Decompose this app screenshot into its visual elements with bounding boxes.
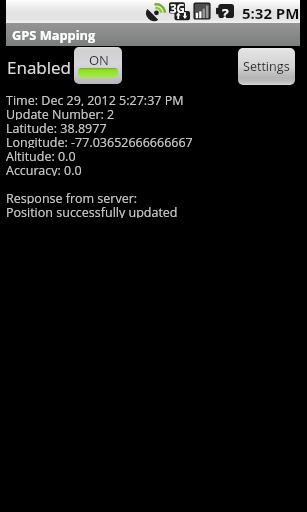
staticText: ? [222,4,229,20]
staticText: 3G [170,1,185,17]
staticText: Altitude: 0.0 [6,148,76,162]
button[interactable]: Settings [238,48,295,85]
staticText: GPS Mapping [12,26,96,43]
staticText: Latitude: 38.8977 [6,120,107,134]
staticText: 5:32 PM [242,3,300,23]
staticText: Position successfully updated [6,204,178,218]
staticText: Response from server: [6,190,138,204]
staticText: Update Number: 2 [6,106,115,120]
staticText: Longitude: -77.03652666666667 [6,134,193,148]
staticText: Settings [243,58,290,75]
button[interactable]: ON [74,47,122,84]
staticText: ON [89,51,109,69]
staticText: Time: Dec 29, 2012 5:27:37 PM [6,92,184,106]
staticText: Enabled [7,56,72,79]
staticText: Accuracy: 0.0 [6,162,82,176]
